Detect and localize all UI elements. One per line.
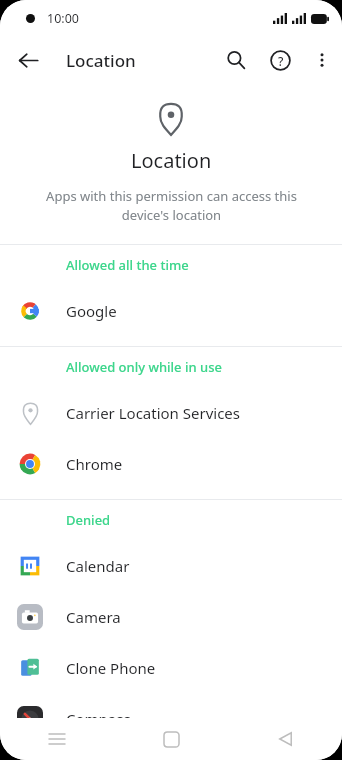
- button[interactable]: Search: [214, 38, 258, 82]
- staticText: Allowed all the time: [66, 256, 189, 274]
- button[interactable]: Recent apps: [0, 718, 114, 760]
- button[interactable]: Compass: [0, 693, 342, 744]
- button[interactable]: Back: [228, 718, 342, 760]
- staticText: Location: [66, 49, 136, 72]
- button[interactable]: Help: [258, 38, 302, 82]
- staticText: Allowed only while in use: [66, 358, 222, 376]
- staticText: Calendar: [66, 556, 130, 576]
- button[interactable]: Carrier Location Services: [0, 387, 342, 438]
- button[interactable]: Google: [0, 285, 342, 336]
- staticText: Camera: [66, 607, 121, 627]
- button[interactable]: Clone Phone: [0, 642, 342, 693]
- staticText: Location: [131, 147, 212, 174]
- staticText: Denied: [66, 511, 111, 529]
- staticText: Clone Phone: [66, 658, 156, 678]
- button[interactable]: Home: [114, 718, 228, 760]
- button[interactable]: Camera: [0, 591, 342, 642]
- staticText: Chrome: [66, 454, 123, 474]
- button[interactable]: Chrome: [0, 438, 342, 489]
- button[interactable]: Calendar: [0, 540, 342, 591]
- staticText: Carrier Location Services: [66, 403, 241, 423]
- button[interactable]: Back: [6, 38, 50, 82]
- staticText: Google: [66, 301, 117, 321]
- button[interactable]: More options: [302, 40, 342, 80]
- staticText: Compass: [66, 709, 131, 729]
- staticText: 10:00: [47, 10, 79, 27]
- staticText: ?: [278, 53, 284, 69]
- staticText: Apps with this permission can access thi…: [46, 187, 297, 224]
